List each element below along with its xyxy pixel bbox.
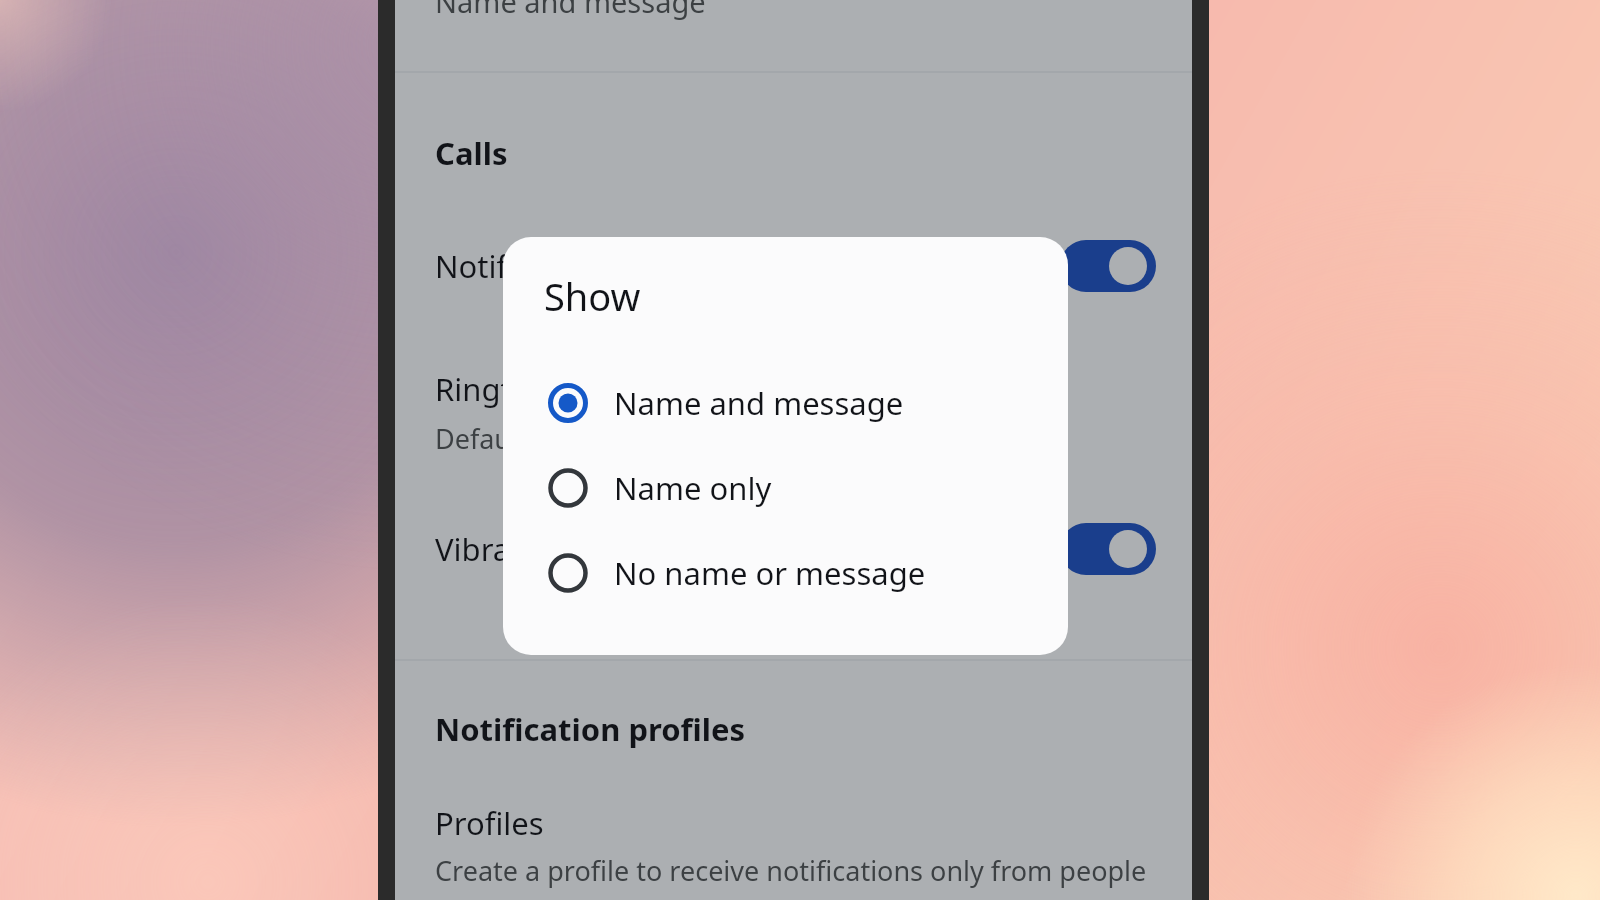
staticText: Name and message bbox=[435, 0, 706, 21]
staticText: Default bbox=[435, 420, 528, 457]
button[interactable]: Name only bbox=[503, 452, 1068, 524]
button[interactable]: Profiles bbox=[395, 788, 1192, 900]
button[interactable]: No name or message bbox=[503, 537, 1068, 609]
button[interactable]: Toggle bbox=[1060, 238, 1156, 294]
staticText: Calls bbox=[435, 132, 508, 174]
button[interactable]: Ringtone bbox=[395, 352, 1192, 462]
button[interactable]: Vibration bbox=[395, 508, 1192, 590]
staticText: Notification profiles bbox=[435, 708, 746, 750]
staticText: Name only bbox=[614, 467, 772, 509]
staticText: No name or message bbox=[614, 552, 926, 594]
staticText: Name and message bbox=[614, 382, 904, 424]
staticText: Ringtone bbox=[435, 368, 568, 410]
button[interactable]: Toggle bbox=[1060, 521, 1156, 577]
staticText: Create a profile to receive notification… bbox=[435, 852, 1147, 889]
button[interactable]: Notifications bbox=[395, 225, 1192, 307]
staticText: Vibration bbox=[435, 528, 568, 570]
button[interactable]: Name and message bbox=[503, 367, 1068, 439]
staticText: Show bbox=[544, 270, 641, 322]
staticText: Notifications bbox=[435, 245, 620, 287]
staticText: Profiles bbox=[435, 802, 544, 844]
